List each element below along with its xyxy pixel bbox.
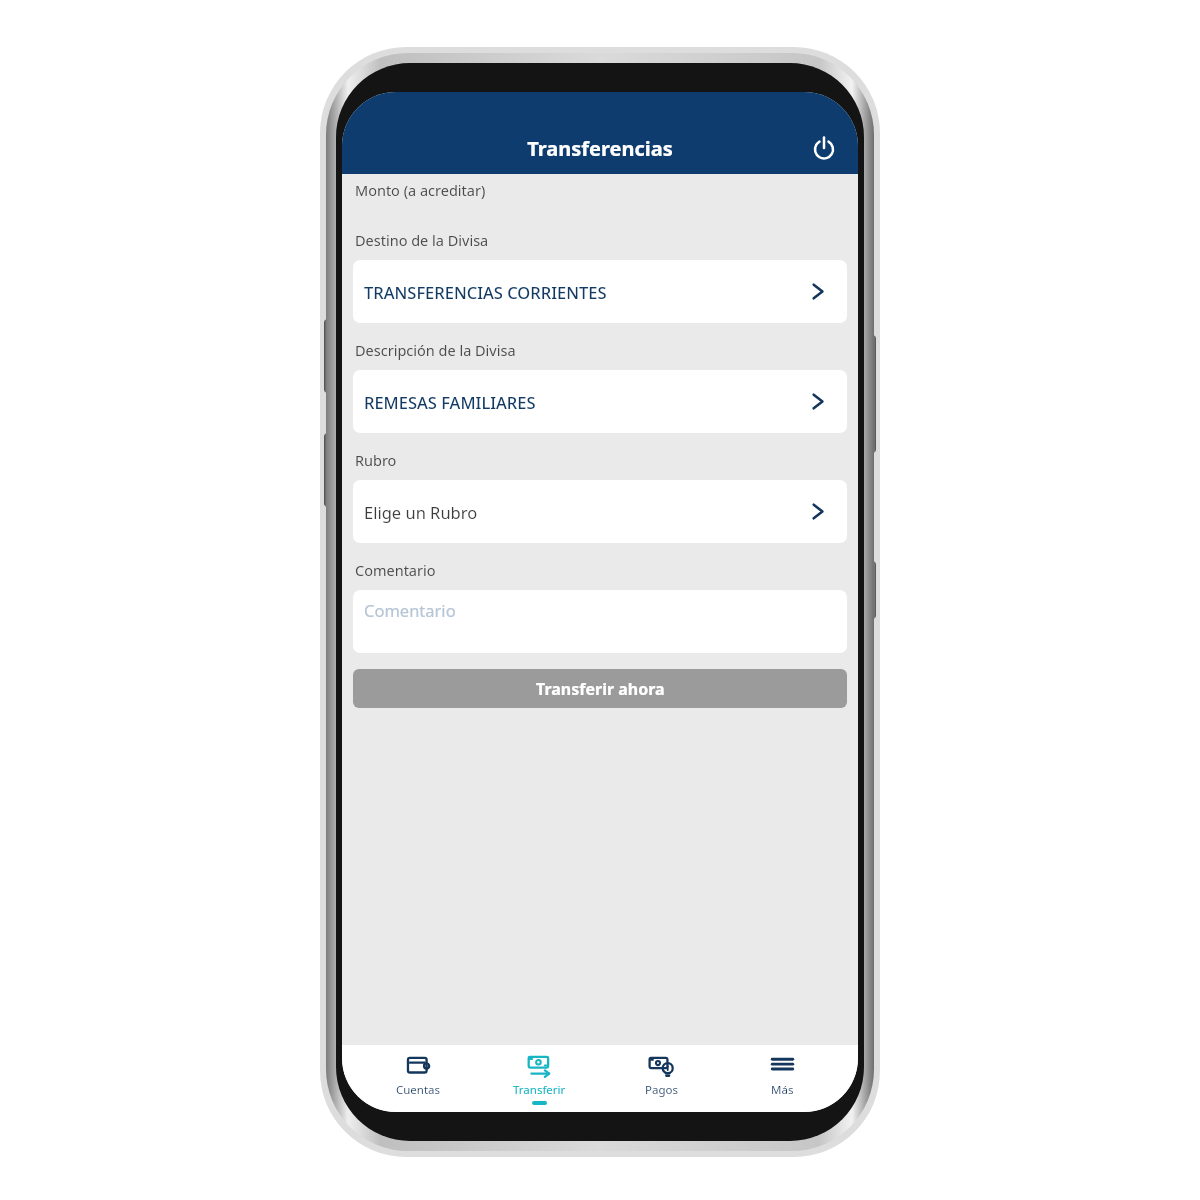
- button[interactable]: REMESAS FAMILIARES: [353, 370, 847, 433]
- staticText: Monto (a acreditar): [355, 180, 486, 200]
- staticText: TRANSFERENCIAS CORRIENTES: [364, 281, 607, 303]
- staticText: Rubro: [355, 450, 397, 470]
- staticText: Descripción de la Divisa: [355, 340, 516, 360]
- button[interactable]: Transferir ahora: [353, 669, 847, 708]
- button[interactable]: Transferir: [494, 1045, 584, 1105]
- button[interactable]: Comentario: [353, 590, 847, 653]
- button[interactable]: TRANSFERENCIAS CORRIENTES: [353, 260, 847, 323]
- staticText: Comentario: [355, 560, 436, 580]
- staticText: Transferir: [513, 1082, 566, 1098]
- staticText: Destino de la Divisa: [355, 230, 489, 250]
- button[interactable]: Cerrar sesión: [804, 128, 844, 168]
- button[interactable]: Pagos: [616, 1045, 706, 1098]
- staticText: Transferir ahora: [536, 678, 665, 700]
- button[interactable]: Cuentas: [373, 1045, 463, 1098]
- staticText: Pagos: [645, 1082, 678, 1098]
- button[interactable]: Elige un Rubro: [353, 480, 847, 543]
- staticText: Comentario: [364, 599, 456, 621]
- button[interactable]: Más: [737, 1045, 827, 1098]
- staticText: Elige un Rubro: [364, 501, 478, 523]
- staticText: REMESAS FAMILIARES: [364, 391, 536, 413]
- staticText: Más: [771, 1082, 794, 1098]
- staticText: Cuentas: [396, 1082, 441, 1098]
- staticText: Transferencias: [527, 135, 673, 162]
